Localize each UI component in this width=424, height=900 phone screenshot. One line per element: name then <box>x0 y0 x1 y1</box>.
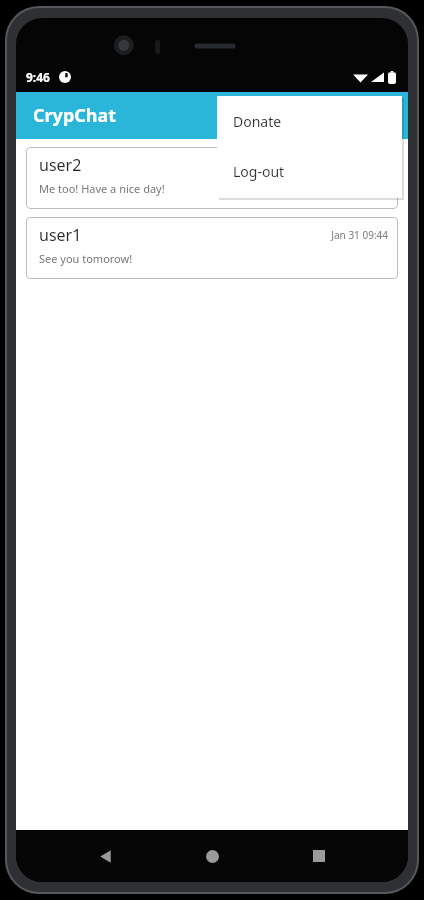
staticText: Log-out <box>233 162 285 181</box>
staticText: Donate <box>233 112 282 131</box>
button[interactable]: Donate <box>217 96 402 146</box>
staticText: user2 <box>39 154 82 176</box>
staticText: See you tomorow! <box>39 251 133 266</box>
staticText: CrypChat <box>33 103 117 128</box>
button[interactable]: Log-out <box>217 146 402 196</box>
staticText: Me too! Have a nice day! <box>39 181 165 196</box>
staticText: Jan 31 09:44 <box>331 228 388 242</box>
staticText: user1 <box>39 224 82 246</box>
button[interactable]: Home <box>194 838 230 874</box>
button[interactable]: Recent apps <box>301 838 337 874</box>
button[interactable]: CrypChat <box>16 92 408 139</box>
button[interactable]: user1 <box>26 217 398 279</box>
button[interactable]: user2 <box>26 147 398 209</box>
staticText: 9:46 <box>26 69 50 85</box>
button[interactable]: Back <box>87 838 123 874</box>
